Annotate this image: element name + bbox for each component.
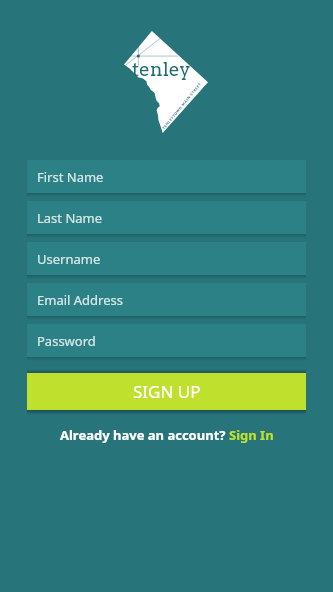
staticText: Sign In [229,426,274,444]
other: Tenley logo [124,31,208,133]
button[interactable]: Sign In [229,426,274,444]
button[interactable]: First Name [27,160,306,193]
staticText: Username [37,250,101,268]
staticText: SIGN UP [133,380,201,403]
button[interactable]: Last Name [27,201,306,234]
staticText: First Name [37,168,104,186]
staticText: Already have an account? [60,426,229,444]
button[interactable]: Password [27,324,306,357]
button[interactable]: Username [27,242,306,275]
button[interactable]: Email Address [27,283,306,316]
button[interactable]: SIGN UP [27,373,306,410]
staticText: Email Address [37,291,123,309]
staticText: Last Name [37,209,103,227]
staticText: Password [37,332,96,350]
staticText: tenley [132,58,191,81]
